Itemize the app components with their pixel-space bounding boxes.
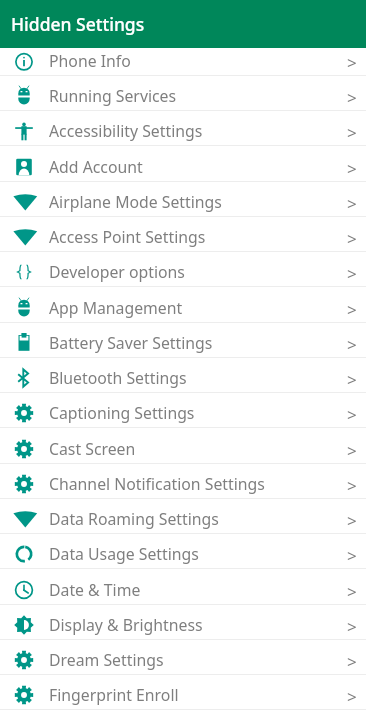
staticText: Hidden Settings [11, 12, 145, 36]
staticText: > [347, 192, 357, 215]
button[interactable]: Phone Info [0, 41, 366, 76]
button[interactable]: Add Account [0, 147, 366, 182]
staticText: > [347, 685, 357, 708]
staticText: Dream Settings [49, 649, 333, 671]
staticText: > [347, 333, 357, 356]
staticText: Running Services [49, 85, 333, 107]
button[interactable]: Battery Saver Settings [0, 323, 366, 358]
staticText: > [347, 121, 357, 144]
staticText: Fingerprint Enroll [49, 684, 333, 706]
staticText: Channel Notification Settings [49, 473, 333, 495]
staticText: > [347, 474, 357, 497]
button[interactable]: Date & Time [0, 570, 366, 605]
staticText: > [347, 615, 357, 638]
button[interactable]: Running Services [0, 76, 366, 111]
staticText: > [347, 298, 357, 321]
button[interactable]: Fingerprint Enroll [0, 675, 366, 710]
button[interactable]: Data Roaming Settings [0, 499, 366, 534]
staticText: Captioning Settings [49, 402, 333, 424]
staticText: > [347, 227, 357, 250]
staticText: App Management [49, 297, 333, 319]
staticText: > [347, 650, 357, 673]
staticText: Airplane Mode Settings [49, 191, 333, 213]
staticText: Developer options [49, 261, 333, 283]
staticText: Display & Brightness [49, 614, 333, 636]
button[interactable]: Dream Settings [0, 640, 366, 675]
button[interactable]: App Management [0, 288, 366, 323]
button[interactable]: Channel Notification Settings [0, 464, 366, 499]
staticText: > [347, 580, 357, 603]
staticText: Date & Time [49, 579, 333, 601]
button[interactable]: Data Usage Settings [0, 534, 366, 569]
staticText: Bluetooth Settings [49, 367, 333, 389]
staticText: Add Account [49, 156, 333, 178]
button[interactable]: Bluetooth Settings [0, 358, 366, 393]
button[interactable]: Access Point Settings [0, 217, 366, 252]
button[interactable]: Airplane Mode Settings [0, 182, 366, 217]
staticText: Phone Info [49, 50, 333, 72]
button[interactable]: Developer options [0, 252, 366, 287]
staticText: > [347, 262, 357, 285]
staticText: > [347, 368, 357, 391]
staticText: > [347, 51, 357, 74]
button[interactable]: Captioning Settings [0, 393, 366, 428]
staticText: Accessibility Settings [49, 120, 333, 142]
button[interactable]: Accessibility Settings [0, 111, 366, 146]
staticText: > [347, 403, 357, 426]
staticText: > [347, 86, 357, 109]
staticText: > [347, 157, 357, 180]
button[interactable]: Hidden Settings [0, 0, 366, 48]
staticText: Battery Saver Settings [49, 332, 333, 354]
staticText: Access Point Settings [49, 226, 333, 248]
staticText: Cast Screen [49, 438, 333, 460]
staticText: Data Usage Settings [49, 543, 333, 565]
staticText: > [347, 544, 357, 567]
staticText: > [347, 509, 357, 532]
button[interactable]: Display & Brightness [0, 605, 366, 640]
button[interactable]: Cast Screen [0, 429, 366, 464]
staticText: Data Roaming Settings [49, 508, 333, 530]
staticText: > [347, 439, 357, 462]
